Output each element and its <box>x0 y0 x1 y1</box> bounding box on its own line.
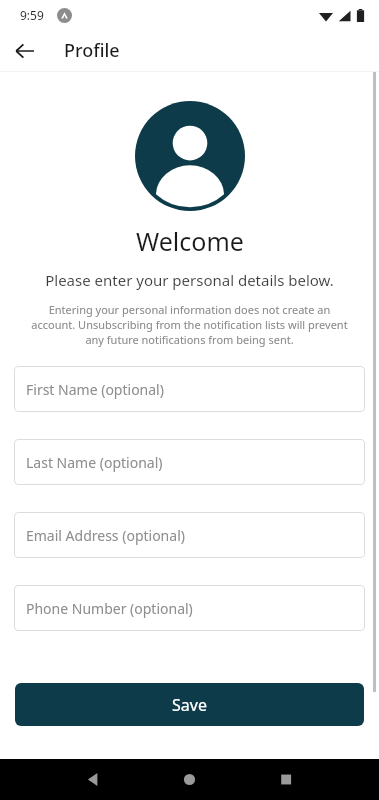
staticText: Save <box>172 694 207 716</box>
button[interactable]: Phone Number (optional) <box>14 585 365 631</box>
button[interactable]: First Name (optional) <box>14 366 365 412</box>
staticText: Phone Number (optional) <box>26 599 193 618</box>
staticText: Entering your personal information does … <box>26 302 353 347</box>
button[interactable]: Save <box>15 683 364 726</box>
staticText: Last Name (optional) <box>26 453 163 472</box>
button[interactable]: Back <box>6 32 44 70</box>
staticText: Welcome <box>136 224 244 258</box>
staticText: Profile <box>64 38 120 63</box>
button[interactable]: Last Name (optional) <box>14 439 365 485</box>
staticText: First Name (optional) <box>26 380 164 399</box>
staticText: Please enter your personal details below… <box>45 270 334 290</box>
staticText: Email Address (optional) <box>26 526 185 545</box>
button[interactable]: Email Address (optional) <box>14 512 365 558</box>
staticText: 9:59 <box>20 7 44 23</box>
